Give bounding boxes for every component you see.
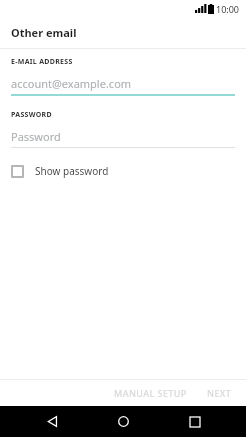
- button[interactable]: MANUAL SETUP: [106, 383, 195, 403]
- button[interactable]: NEXT: [199, 383, 240, 403]
- button[interactable]: Show password: [11, 162, 109, 180]
- staticText: Show password: [35, 164, 109, 178]
- staticText: NEXT: [207, 387, 232, 399]
- staticText: account@example.com: [11, 76, 132, 91]
- button[interactable]: Home: [103, 406, 143, 437]
- button[interactable]: Password: [11, 129, 235, 148]
- staticText: E-MAIL ADDRESS: [11, 57, 73, 67]
- staticText: Other email: [11, 25, 77, 40]
- button[interactable]: Back: [32, 406, 72, 437]
- staticText: Password: [11, 129, 61, 144]
- staticText: 10:00: [216, 3, 240, 15]
- staticText: MANUAL SETUP: [114, 387, 187, 399]
- staticText: PASSWORD: [11, 110, 52, 120]
- button[interactable]: account@example.com: [11, 76, 235, 96]
- button[interactable]: Recent apps: [175, 406, 215, 437]
